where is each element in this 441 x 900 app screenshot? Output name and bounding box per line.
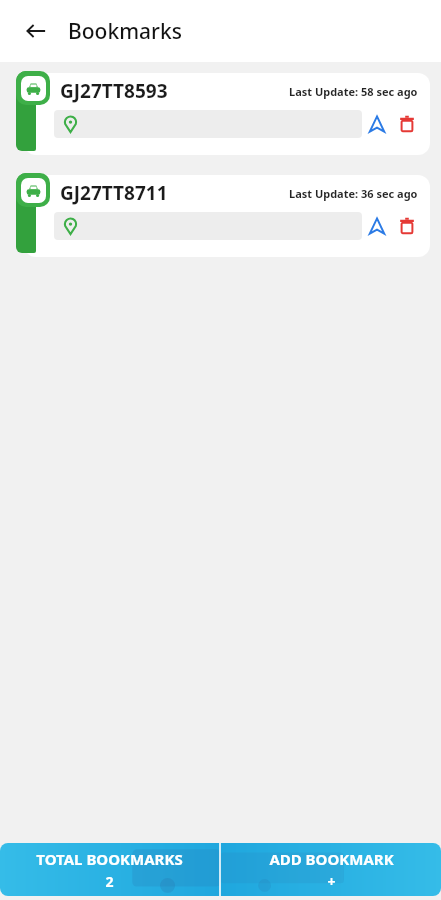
staticText: ADD BOOKMARK [269, 849, 394, 869]
staticText: GJ27TT8593 [60, 78, 168, 104]
staticText: Last Update: 36 sec ago [289, 186, 418, 201]
button[interactable]: Delete [392, 109, 422, 139]
button[interactable]: Navigate [362, 109, 392, 139]
button[interactable]: TOTAL BOOKMARKS [0, 843, 219, 896]
button[interactable] [54, 212, 362, 240]
staticText: Last Update: 58 sec ago [289, 84, 418, 99]
staticText: TOTAL BOOKMARKS [36, 849, 183, 869]
staticText: 2 [105, 872, 114, 891]
button[interactable] [24, 73, 430, 155]
button[interactable]: ADD BOOKMARK [221, 843, 441, 896]
staticText: Bookmarks [68, 17, 182, 46]
button[interactable]: Navigate [362, 211, 392, 241]
staticText: GJ27TT8711 [60, 180, 168, 206]
button[interactable]: Back [14, 9, 58, 53]
button[interactable] [54, 110, 362, 138]
button[interactable]: Delete [392, 211, 422, 241]
staticText: + [327, 872, 336, 891]
button[interactable] [24, 175, 430, 257]
